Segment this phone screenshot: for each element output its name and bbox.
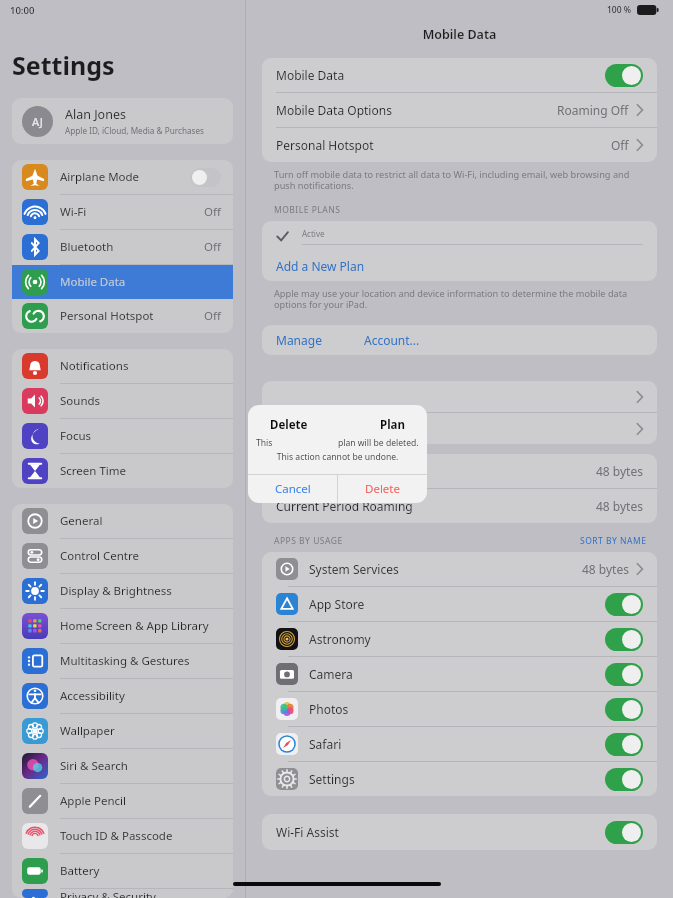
- staticText: Apple may use your location and device i…: [274, 287, 643, 311]
- staticText: Delete: [365, 481, 400, 497]
- button[interactable]: Apple Pencil: [12, 784, 233, 818]
- button[interactable]: Astronomy: [262, 622, 657, 656]
- staticText: Settings: [12, 48, 115, 82]
- staticText: Display & Brightness: [60, 583, 221, 599]
- staticText: Focus: [60, 428, 221, 444]
- staticText: Apple Pencil: [60, 793, 221, 809]
- staticText: Home Screen & App Library: [60, 618, 221, 634]
- staticText: Off: [611, 137, 629, 153]
- button[interactable]: Mobile Data Options: [262, 93, 657, 127]
- button[interactable]: Wi-Fi: [12, 195, 233, 229]
- staticText: Manage: [276, 332, 322, 348]
- button[interactable]: On: [605, 768, 643, 791]
- button[interactable]: System Services: [262, 552, 657, 586]
- button[interactable]: Privacy & Security: [12, 889, 233, 898]
- button[interactable]: Focus: [12, 419, 233, 453]
- button[interactable]: Multitasking & Gestures: [12, 644, 233, 678]
- button[interactable]: Notifications: [12, 349, 233, 383]
- button[interactable]: Active: [262, 221, 657, 251]
- staticText: Settings: [309, 771, 605, 787]
- staticText: Cancel: [275, 481, 311, 497]
- button[interactable]: On: [605, 698, 643, 721]
- staticText: Accessibility: [60, 688, 221, 704]
- button[interactable]: Bluetooth: [12, 230, 233, 264]
- button[interactable]: [262, 381, 657, 412]
- button[interactable]: Screen Time: [12, 454, 233, 488]
- button[interactable]: App Store: [262, 587, 657, 621]
- staticText: 10:00: [10, 4, 35, 17]
- button[interactable]: Delete: [338, 475, 427, 503]
- button[interactable]: On: [605, 821, 643, 844]
- staticText: General: [60, 513, 221, 529]
- staticText: Roaming Off: [557, 102, 629, 118]
- staticText: Touch ID & Passcode: [60, 828, 221, 844]
- button[interactable]: Control Centre: [12, 539, 233, 573]
- button[interactable]: Touch ID & Passcode: [12, 819, 233, 853]
- staticText: Plan: [380, 417, 405, 433]
- button[interactable]: Battery: [12, 854, 233, 888]
- staticText: Mobile Data: [246, 26, 673, 43]
- staticText: Personal Hotspot: [276, 137, 611, 153]
- staticText: SORT BY NAME: [580, 535, 647, 547]
- button[interactable]: Settings: [262, 762, 657, 796]
- staticText: This: [256, 437, 273, 449]
- button[interactable]: General: [12, 504, 233, 538]
- button[interactable]: Personal Hotspot: [12, 299, 233, 333]
- button[interactable]: Add a New Plan: [262, 251, 657, 281]
- staticText: Airplane Mode: [60, 169, 190, 185]
- staticText: MOBILE PLANS: [274, 204, 647, 216]
- button[interactable]: Current Period Roaming: [262, 489, 657, 523]
- button[interactable]: Camera: [262, 657, 657, 691]
- staticText: 100 %: [607, 4, 632, 16]
- button[interactable]: Airplane Mode: [12, 160, 233, 194]
- button[interactable]: Manage: [276, 332, 322, 348]
- button[interactable]: Photos: [262, 692, 657, 726]
- button[interactable]: Home Screen & App Library: [12, 609, 233, 643]
- button[interactable]: Accessibility: [12, 679, 233, 713]
- staticText: 48 bytes: [582, 561, 629, 577]
- button[interactable]: Personal Hotspot: [262, 128, 657, 162]
- staticText: Siri & Search: [60, 758, 221, 774]
- staticText: Mobile Data: [60, 274, 221, 290]
- staticText: Battery: [60, 863, 221, 879]
- button[interactable]: On: [605, 64, 643, 87]
- button[interactable]: On: [605, 628, 643, 651]
- button[interactable]: Display & Brightness: [12, 574, 233, 608]
- button[interactable]: Airplane Mode off: [190, 168, 221, 187]
- staticText: Off: [204, 308, 221, 324]
- staticText: Mobile Data: [276, 67, 605, 83]
- button[interactable]: On: [605, 663, 643, 686]
- staticText: Astronomy: [309, 631, 605, 647]
- staticText: APPS BY USAGE: [274, 535, 580, 547]
- staticText: Mobile Data Options: [276, 102, 557, 118]
- button[interactable]: On: [605, 733, 643, 756]
- button[interactable]: SORT BY NAME: [580, 535, 647, 547]
- staticText: plan will be deleted.: [338, 437, 419, 449]
- button[interactable]: Wallpaper: [12, 714, 233, 748]
- button[interactable]: [262, 413, 657, 444]
- button[interactable]: Cancel: [248, 475, 337, 503]
- staticText: Notifications: [60, 358, 221, 374]
- staticText: Screen Time: [60, 463, 221, 479]
- staticText: Current Period Roaming: [276, 498, 596, 514]
- button[interactable]: Account...: [364, 332, 420, 348]
- button[interactable]: Sounds: [12, 384, 233, 418]
- button[interactable]: Current Period: [262, 454, 657, 488]
- button[interactable]: Mobile Data: [12, 265, 233, 299]
- button[interactable]: Wi-Fi Assist: [262, 814, 657, 850]
- staticText: Alan Jones: [65, 106, 126, 123]
- staticText: Sounds: [60, 393, 221, 409]
- button[interactable]: Safari: [262, 727, 657, 761]
- staticText: 48 bytes: [596, 463, 643, 479]
- staticText: Camera: [309, 666, 605, 682]
- staticText: Active: [302, 228, 325, 239]
- staticText: Photos: [309, 701, 605, 717]
- button[interactable]: On: [605, 593, 643, 616]
- staticText: Wi-Fi: [60, 204, 204, 220]
- button[interactable]: Siri & Search: [12, 749, 233, 783]
- staticText: AJ: [32, 114, 43, 129]
- button[interactable]: AJ: [12, 98, 233, 144]
- button[interactable]: Mobile Data: [262, 58, 657, 92]
- staticText: Delete: [270, 417, 308, 433]
